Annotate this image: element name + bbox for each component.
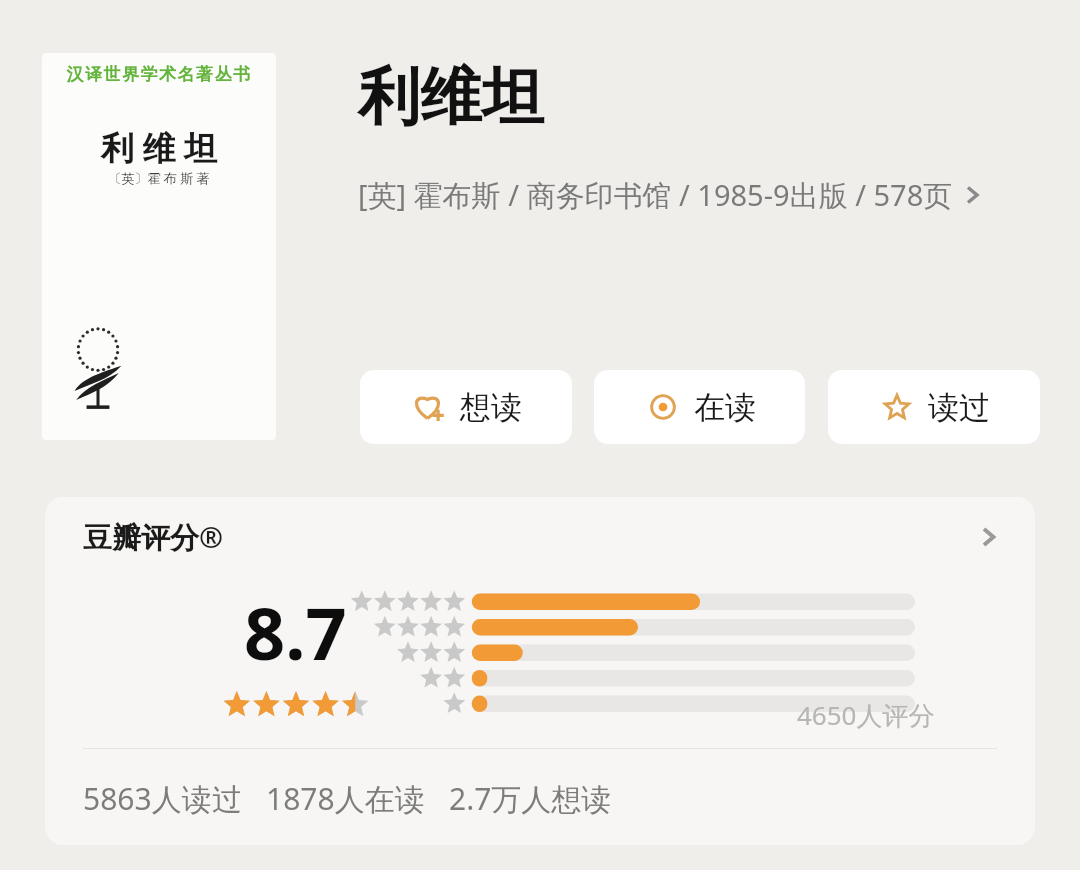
button[interactable]: 5863人读过: [83, 772, 612, 824]
staticText: [英] 霍布斯 / 商务印书馆 / 1985-9出版 / 578页: [358, 175, 953, 215]
button[interactable]: 豆瓣评分®: [45, 497, 1035, 577]
staticText: 2.7万人想读: [449, 778, 612, 819]
button[interactable]: 在读: [594, 370, 805, 444]
staticText: 4650人评分: [797, 697, 935, 733]
staticText: 5863人读过: [83, 778, 242, 819]
button[interactable]: 想读: [360, 370, 572, 444]
button[interactable]: 读过: [828, 370, 1040, 444]
staticText: 1878人在读: [266, 778, 425, 819]
staticText: 想读: [460, 388, 522, 427]
staticText: 利维坦: [358, 58, 544, 136]
staticText: 汉译世界学术名著丛书: [42, 64, 276, 85]
staticText: 8.7: [244, 583, 347, 681]
staticText: 豆瓣评分®: [83, 517, 224, 557]
button[interactable]: Book cover: [42, 53, 276, 440]
staticText: 〔英〕霍 布 斯 著: [42, 169, 276, 187]
button[interactable]: [英] 霍布斯 / 商务印书馆 / 1985-9出版 / 578页: [358, 175, 1048, 215]
staticText: 读过: [928, 388, 990, 427]
staticText: 在读: [694, 388, 756, 427]
staticText: 利 维 坦: [42, 125, 276, 170]
